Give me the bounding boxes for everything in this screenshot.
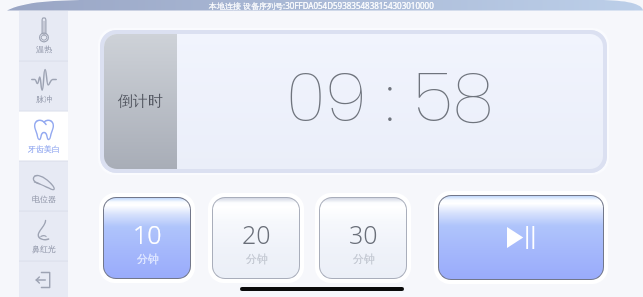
staticText: 分钟 — [246, 252, 268, 266]
button[interactable]: Log out — [19, 261, 68, 297]
staticText: 09 : 58 — [286, 51, 494, 145]
staticText: 牙齿美白 — [28, 144, 60, 154]
button[interactable]: 30 — [320, 198, 406, 278]
staticText: 10 — [133, 217, 162, 251]
button[interactable]: 鼻红光 — [19, 211, 68, 261]
button[interactable]: 10 — [104, 198, 190, 278]
staticText: 分钟 — [137, 252, 159, 266]
staticText: 脉冲 — [36, 94, 52, 104]
staticText: 电位器 — [32, 194, 56, 204]
button[interactable]: 20 — [213, 198, 299, 278]
staticText: 本地连接 设备序列号:30FFDA054D5938354838154303010… — [209, 0, 434, 11]
button[interactable]: Play or pause — [439, 196, 603, 279]
button[interactable]: 脉冲 — [19, 61, 68, 111]
staticText: 温热 — [36, 44, 52, 54]
button[interactable]: 电位器 — [19, 161, 68, 211]
button[interactable]: 牙齿美白 — [19, 111, 68, 161]
staticText: 鼻红光 — [32, 244, 56, 254]
staticText: 20 — [242, 217, 271, 251]
staticText: 30 — [349, 217, 378, 251]
staticText: 分钟 — [353, 252, 375, 266]
staticText: 倒计时 — [118, 92, 163, 111]
button[interactable]: 温热 — [19, 11, 68, 61]
